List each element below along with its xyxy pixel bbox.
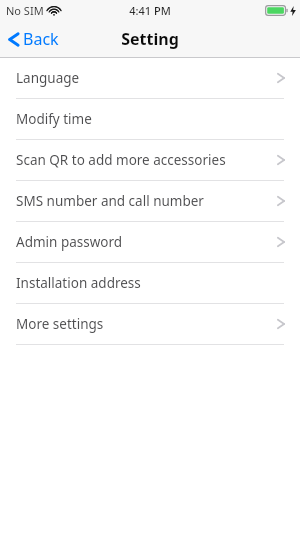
staticText: No SIM xyxy=(6,3,44,18)
other: Open SMS number and call number xyxy=(277,194,285,208)
button[interactable]: Language xyxy=(0,58,300,98)
other: Open More settings xyxy=(277,317,285,331)
button[interactable]: SMS number and call number xyxy=(0,181,300,221)
staticText: Admin password xyxy=(16,233,123,251)
button[interactable]: Back xyxy=(0,20,69,58)
other: Open Scan QR to add more accessories xyxy=(277,153,285,167)
staticText: Setting xyxy=(121,28,179,50)
button[interactable]: Modify time xyxy=(0,99,300,139)
button[interactable]: Scan QR to add more accessories xyxy=(0,140,300,180)
staticText: Scan QR to add more accessories xyxy=(16,151,226,169)
staticText: Modify time xyxy=(16,110,92,128)
button[interactable]: More settings xyxy=(0,304,300,344)
button[interactable]: Admin password xyxy=(0,222,300,262)
other: Open Language xyxy=(277,71,285,85)
other: Open Admin password xyxy=(277,235,285,249)
staticText: Back xyxy=(23,28,59,50)
staticText: SMS number and call number xyxy=(16,192,204,210)
button[interactable]: Installation address xyxy=(0,263,300,303)
staticText: More settings xyxy=(16,315,104,333)
staticText: Installation address xyxy=(16,274,141,292)
staticText: 4:41 PM xyxy=(129,3,171,18)
staticText: Language xyxy=(16,69,80,87)
